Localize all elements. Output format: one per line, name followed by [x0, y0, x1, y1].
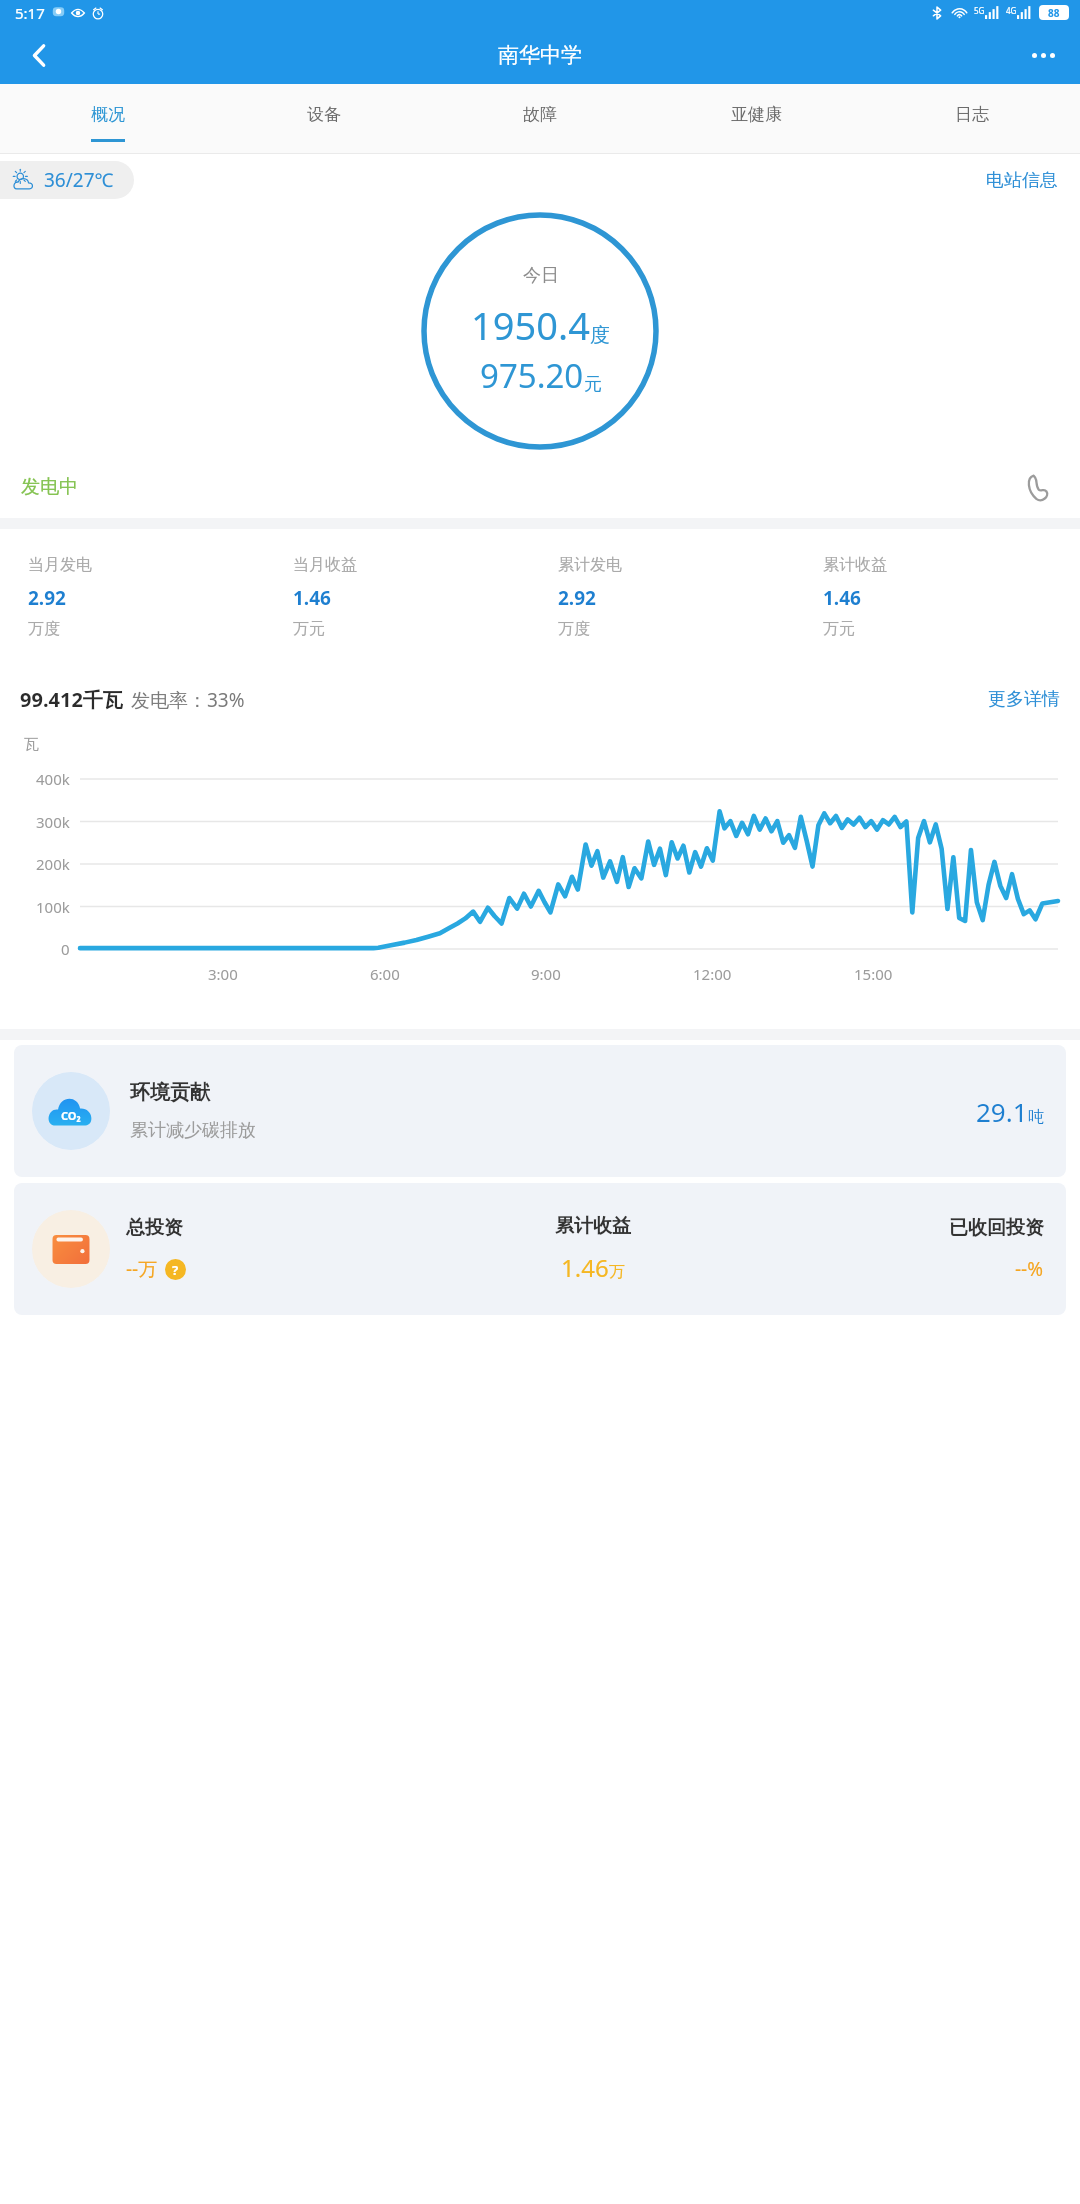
staticText: 1.46 [293, 585, 331, 611]
staticText: 电站信息 [986, 169, 1058, 192]
staticText: 88 [1048, 6, 1060, 20]
staticText: 6:00 [370, 964, 400, 984]
button[interactable]: 设备 [216, 84, 432, 154]
button[interactable]: 更多详情 [988, 688, 1060, 711]
staticText: 400k [36, 769, 70, 789]
button[interactable]: 当月收益 [279, 537, 536, 661]
staticText: 15:00 [854, 964, 893, 984]
staticText: 万度 [558, 619, 590, 639]
staticText: 日志 [955, 104, 989, 125]
button[interactable]: 总投资 [14, 1183, 1066, 1315]
staticText: 更多详情 [988, 688, 1060, 711]
staticText: 已收回投资 [949, 1216, 1044, 1240]
staticText: 亚健康 [731, 104, 782, 125]
staticText: 2.92 [28, 585, 66, 611]
button[interactable]: 累计发电 [544, 537, 801, 661]
staticText: 当月发电 [28, 555, 92, 575]
staticText: 概况 [91, 104, 125, 125]
button[interactable]: CO₂ [14, 1045, 1066, 1177]
staticText: 瓦 [24, 735, 39, 754]
button[interactable]: 累计收益 [809, 537, 1066, 661]
staticText: 1.46 [823, 585, 861, 611]
staticText: 0 [61, 939, 70, 959]
staticText: 累计发电 [558, 555, 622, 575]
staticText: 36/27℃ [44, 167, 114, 193]
staticText: 5G [974, 5, 985, 16]
staticText: 设备 [307, 104, 341, 125]
staticText: 度 [590, 323, 610, 348]
button[interactable]: 亚健康 [648, 84, 864, 154]
button[interactable]: 36/27℃ [0, 161, 134, 199]
staticText: 当月收益 [293, 555, 357, 575]
staticText: 万度 [28, 619, 60, 639]
button[interactable]: Call [1016, 465, 1060, 509]
staticText: 今日 [523, 264, 559, 287]
staticText: 累计收益 [555, 1214, 631, 1238]
staticText: 9:00 [531, 964, 561, 984]
staticText: 5:17 [15, 3, 45, 23]
staticText: 环境贡献 [130, 1080, 210, 1105]
button[interactable]: 电站信息 [986, 169, 1058, 192]
button[interactable]: Back [16, 32, 62, 78]
staticText: 累计减少碳排放 [130, 1119, 256, 1142]
button[interactable]: More options [1020, 32, 1066, 78]
staticText: 100k [36, 897, 70, 917]
staticText: 975.20 [480, 353, 584, 398]
staticText: 1.46 [561, 1251, 609, 1284]
staticText: 南华中学 [498, 42, 582, 68]
button[interactable]: 故障 [432, 84, 648, 154]
staticText: 3:00 [208, 964, 238, 984]
staticText: 总投资 [126, 1216, 183, 1240]
staticText: --万 [126, 1256, 158, 1282]
staticText: 故障 [523, 104, 557, 125]
staticText: 吨 [1028, 1107, 1044, 1127]
staticText: 12:00 [693, 964, 732, 984]
staticText: 4G [1006, 5, 1017, 16]
staticText: 元 [584, 373, 602, 396]
staticText: 300k [36, 812, 70, 832]
button[interactable]: 概况 [0, 84, 216, 154]
staticText: ? [172, 1261, 179, 1279]
staticText: 发电中 [21, 475, 78, 499]
staticText: 万元 [823, 619, 855, 639]
staticText: 2.92 [558, 585, 596, 611]
staticText: 1950.4 [471, 299, 590, 351]
button[interactable]: 当月发电 [14, 537, 271, 661]
staticText: 200k [36, 854, 70, 874]
staticText: CO₂ [61, 1108, 81, 1123]
staticText: 万元 [293, 619, 325, 639]
button[interactable]: 日志 [864, 84, 1080, 154]
staticText: 累计收益 [823, 555, 887, 575]
staticText: 99.412千瓦 [20, 686, 123, 713]
staticText: 发电率：33% [131, 687, 245, 713]
staticText: --% [1015, 1256, 1044, 1282]
staticText: 万 [609, 1262, 625, 1282]
staticText: 29.1 [976, 1094, 1028, 1129]
